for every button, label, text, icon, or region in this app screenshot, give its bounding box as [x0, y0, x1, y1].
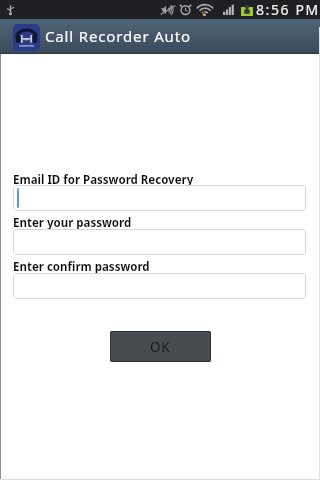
button[interactable]: Email ID for Password Recovery — [13, 185, 306, 211]
button[interactable]: Enter your password — [13, 229, 306, 255]
button[interactable]: Call Recorder Auto — [0, 19, 320, 53]
staticText: Enter your password — [13, 215, 132, 231]
button[interactable]: Enter confirm password — [13, 273, 306, 299]
button[interactable]: OK — [110, 331, 211, 362]
staticText: 8:56 PM — [256, 0, 320, 19]
staticText: Email ID for Password Recovery — [13, 172, 194, 188]
staticText: Enter confirm password — [13, 259, 150, 275]
staticText: OK — [150, 338, 171, 356]
staticText: Call Recorder Auto — [45, 26, 191, 46]
